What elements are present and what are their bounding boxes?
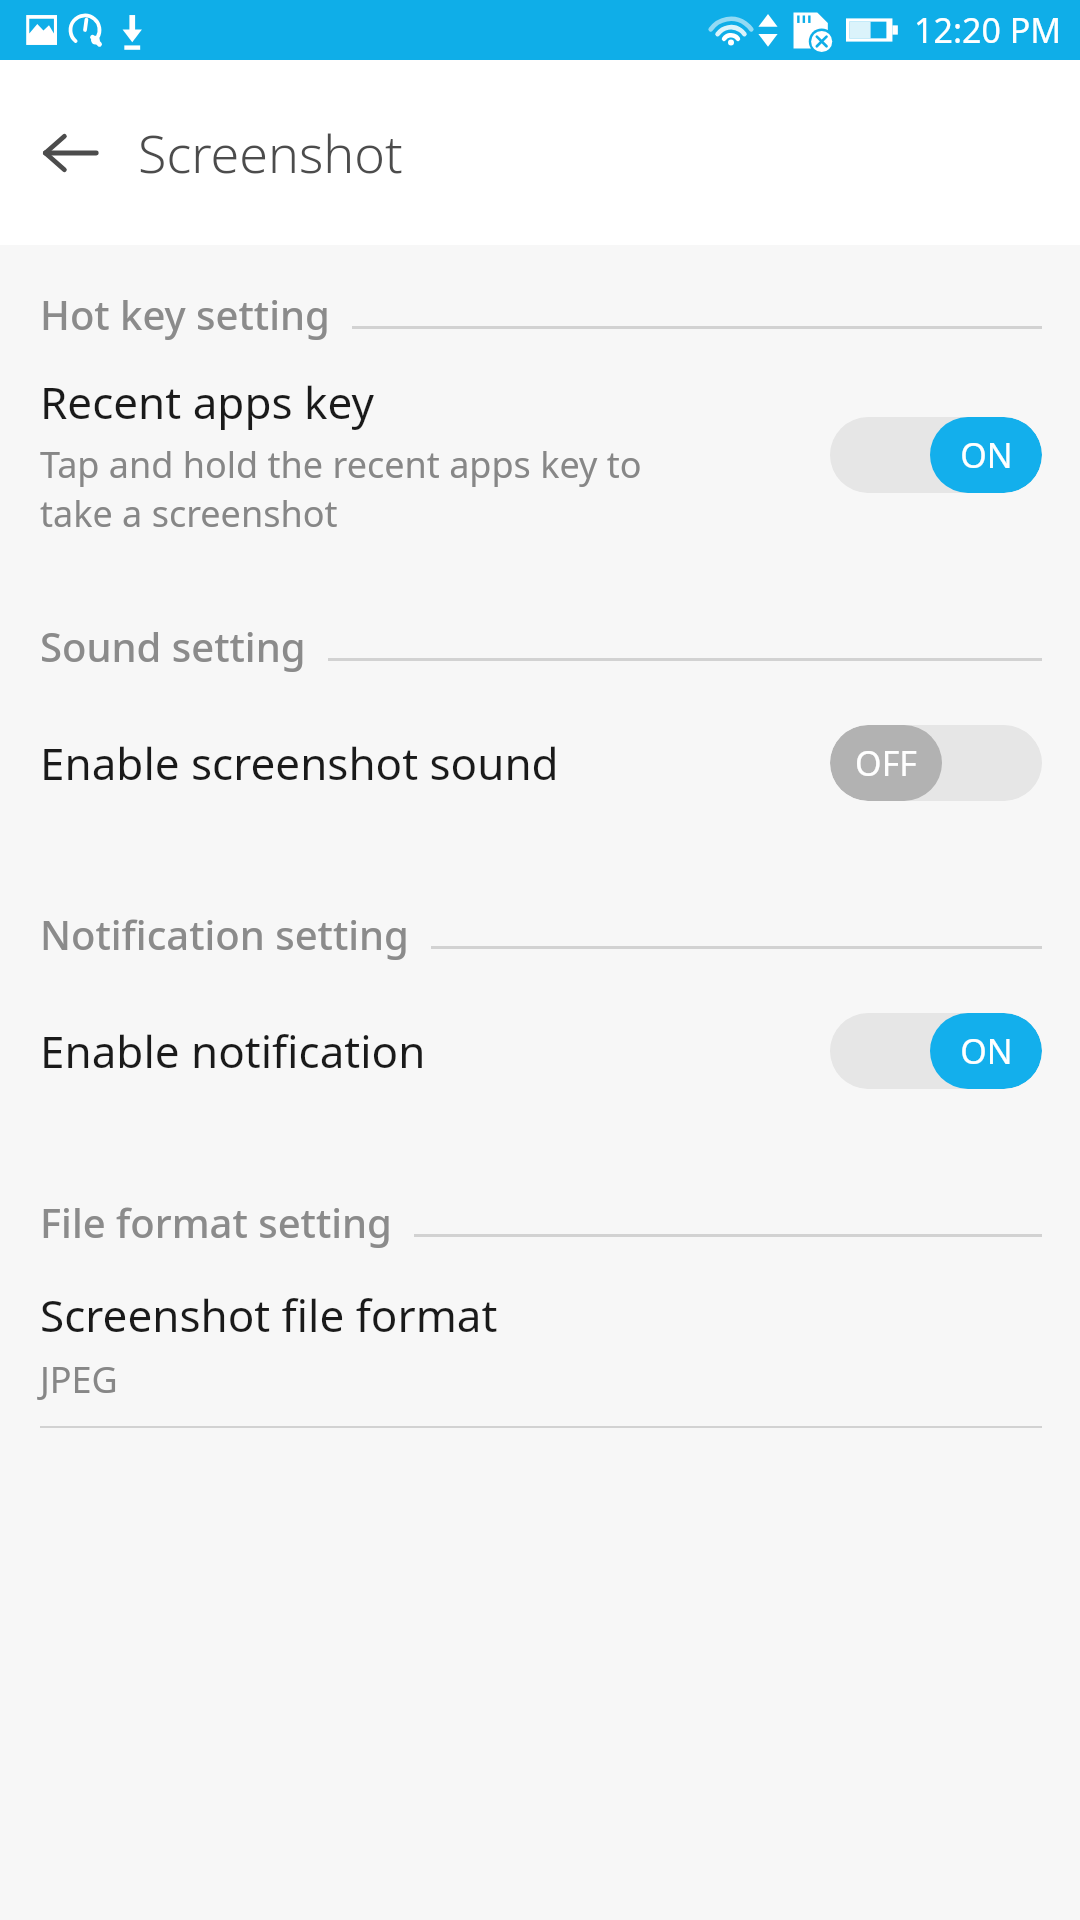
staticText: Recent apps key xyxy=(40,372,374,432)
staticText: ON xyxy=(960,1028,1013,1074)
staticText: File format setting xyxy=(40,1195,392,1249)
staticText: Screenshot xyxy=(138,117,403,188)
button[interactable]: Recent apps key xyxy=(0,355,1080,555)
staticText: JPEG xyxy=(40,1355,118,1404)
button[interactable]: Off xyxy=(830,725,1042,801)
staticText: Enable notification xyxy=(40,1021,426,1081)
button[interactable]: Enable screenshot sound xyxy=(0,687,1080,839)
button[interactable]: On xyxy=(830,1013,1042,1089)
staticText: Screenshot file format xyxy=(40,1285,498,1345)
staticText: Hot key setting xyxy=(40,287,330,341)
staticText: 12:20 PM xyxy=(914,7,1062,53)
staticText: OFF xyxy=(855,740,917,786)
staticText: Tap and hold the recent apps key to take… xyxy=(40,440,642,538)
staticText: ON xyxy=(960,432,1013,478)
staticText: Sound setting xyxy=(40,619,306,673)
button[interactable]: Enable notification xyxy=(0,975,1080,1127)
button[interactable]: Screenshot file format xyxy=(0,1267,1080,1426)
staticText: Notification setting xyxy=(40,907,409,961)
button[interactable]: On xyxy=(830,417,1042,493)
staticText: Enable screenshot sound xyxy=(40,733,559,793)
button[interactable]: Navigate up xyxy=(24,107,116,199)
